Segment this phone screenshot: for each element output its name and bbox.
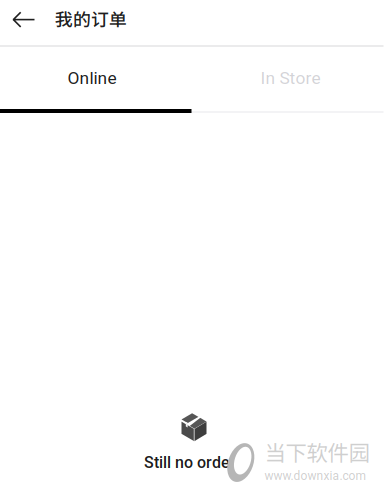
staticText: 当下软件园 xyxy=(264,436,369,467)
staticText: 我的订单 xyxy=(55,6,127,31)
staticText: Still no orders xyxy=(144,453,244,472)
staticText: www.downxia.com xyxy=(264,469,366,483)
button[interactable]: In Store xyxy=(190,47,383,113)
button[interactable]: Online xyxy=(0,47,190,113)
button[interactable]: Back xyxy=(0,0,55,45)
staticText: In Store xyxy=(260,68,320,88)
staticText: Online xyxy=(67,68,116,88)
